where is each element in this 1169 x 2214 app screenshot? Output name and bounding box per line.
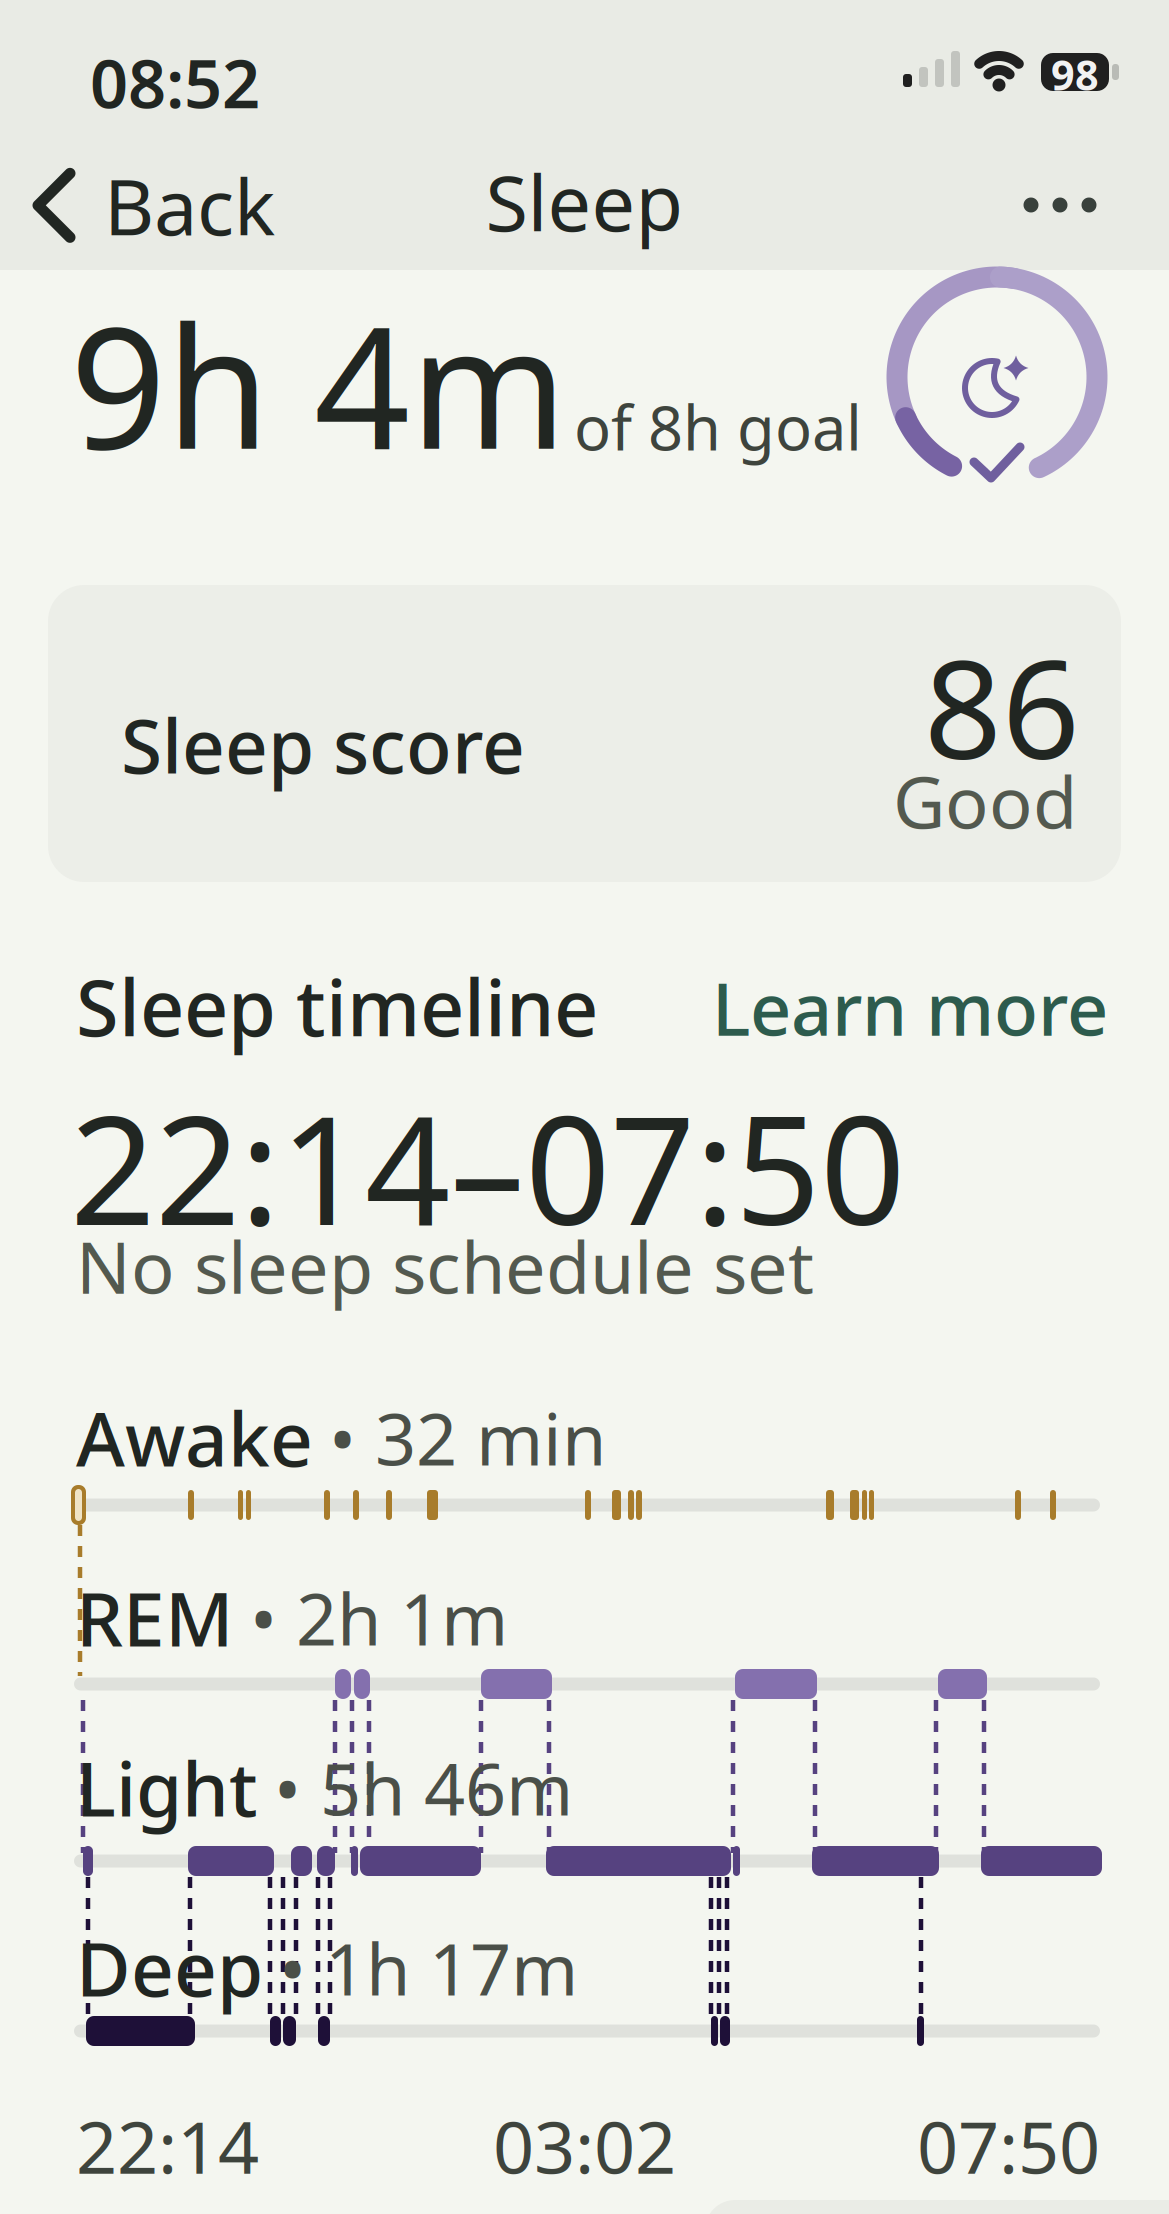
- staticText: • 1h 17m: [279, 1920, 578, 2015]
- staticText: 07:50: [917, 2098, 1100, 2194]
- staticText: Sleep timeline: [76, 955, 598, 1058]
- staticText: • 32 min: [329, 1390, 606, 1485]
- staticText: 86: [924, 616, 1080, 797]
- staticText: 22:14–07:50: [70, 1068, 905, 1266]
- staticText: 08:52: [90, 38, 260, 126]
- staticText: Sleep: [485, 150, 683, 253]
- button[interactable]: More options: [1005, 175, 1115, 235]
- staticText: Back: [104, 154, 275, 257]
- staticText: 22:14: [76, 2098, 259, 2194]
- staticText: Light: [76, 1738, 258, 1837]
- staticText: Good: [893, 753, 1077, 849]
- staticText: 98: [1051, 47, 1099, 102]
- staticText: Learn more: [712, 960, 1108, 1056]
- button[interactable]: Sleep score: [48, 585, 1121, 882]
- staticText: REM: [76, 1568, 234, 1667]
- staticText: of 8h goal: [574, 386, 862, 467]
- staticText: Deep: [76, 1918, 263, 2017]
- staticText: Sleep score: [121, 695, 525, 794]
- staticText: • 5h 46m: [274, 1740, 573, 1835]
- button[interactable]: Learn more: [712, 960, 1108, 1056]
- staticText: • 2h 1m: [250, 1570, 508, 1665]
- staticText: 03:02: [493, 2098, 676, 2194]
- staticText: No sleep schedule set: [76, 1218, 814, 1314]
- staticText: Awake: [76, 1388, 313, 1487]
- staticText: 9h 4m: [70, 272, 567, 495]
- button[interactable]: Back: [30, 154, 275, 257]
